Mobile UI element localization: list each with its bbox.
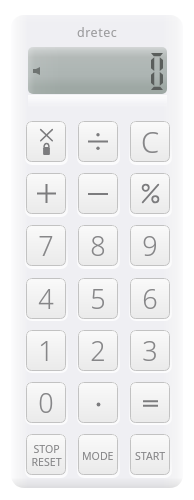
button[interactable]: Plus bbox=[26, 173, 66, 214]
staticText: 5 bbox=[90, 280, 106, 317]
button[interactable]: 1 bbox=[26, 330, 66, 371]
button[interactable]: 7 bbox=[26, 225, 66, 266]
button[interactable]: Minus bbox=[78, 173, 118, 214]
staticText: 0 bbox=[38, 384, 54, 421]
staticText: 2 bbox=[90, 332, 106, 369]
staticText: 3 bbox=[142, 332, 158, 369]
staticText: 4 bbox=[38, 280, 54, 317]
staticText: 6 bbox=[142, 280, 158, 317]
button[interactable]: Clear bbox=[130, 121, 170, 162]
staticText: C bbox=[141, 122, 160, 161]
staticText: START bbox=[135, 449, 166, 463]
staticText: 9 bbox=[142, 227, 158, 264]
button[interactable]: Equals bbox=[130, 382, 170, 423]
staticText: 8 bbox=[90, 227, 106, 264]
button[interactable]: 2 bbox=[78, 330, 118, 371]
button[interactable]: Clear all and lock bbox=[26, 121, 66, 162]
button[interactable]: 3 bbox=[130, 330, 170, 371]
button[interactable]: 9 bbox=[130, 225, 170, 266]
staticText: MODE bbox=[82, 449, 114, 463]
button[interactable]: 0 bbox=[26, 382, 66, 423]
button[interactable]: Decimal point bbox=[78, 382, 118, 423]
button[interactable]: 6 bbox=[130, 278, 170, 319]
button[interactable]: Divide bbox=[78, 121, 118, 162]
staticText: 7 bbox=[38, 227, 54, 264]
button[interactable]: 4 bbox=[26, 278, 66, 319]
button[interactable]: 8 bbox=[78, 225, 118, 266]
staticText: dretec bbox=[77, 24, 118, 41]
button[interactable]: 5 bbox=[78, 278, 118, 319]
staticText: 1 bbox=[38, 332, 54, 369]
other: Sound bbox=[33, 67, 40, 75]
button[interactable]: Mode bbox=[78, 434, 118, 475]
button[interactable]: Start bbox=[130, 434, 170, 475]
button[interactable]: Stop Reset bbox=[26, 434, 66, 475]
staticText: STOP RESET bbox=[31, 442, 62, 469]
button[interactable]: Percent bbox=[130, 173, 170, 214]
